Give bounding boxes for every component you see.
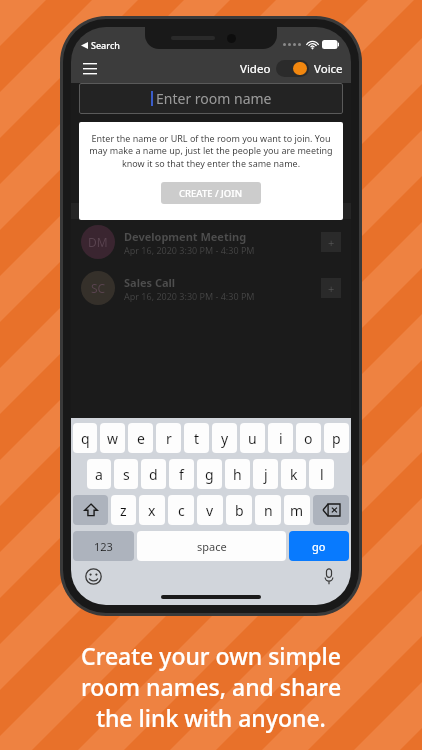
button[interactable]: p <box>324 423 349 453</box>
button[interactable]: space <box>137 531 286 561</box>
button[interactable]: d <box>141 459 166 489</box>
staticText: DM <box>88 234 108 250</box>
staticText: c <box>178 501 185 520</box>
staticText: Apr 16, 2020 3:30 PM - 4:30 PM <box>124 290 255 302</box>
button[interactable]: Shift <box>73 495 108 525</box>
button[interactable]: c <box>168 495 194 525</box>
staticText: y <box>221 429 229 448</box>
button[interactable]: q <box>73 423 97 453</box>
staticText: Video <box>240 61 271 77</box>
button[interactable]: h <box>225 459 250 489</box>
button[interactable]: u <box>240 423 265 453</box>
staticText: o <box>304 429 313 448</box>
button[interactable]: 123 <box>73 531 134 561</box>
staticText: the link with anyone. <box>0 702 422 733</box>
button[interactable]: i <box>268 423 293 453</box>
button[interactable]: Dictate <box>319 566 339 586</box>
button[interactable]: DM <box>71 219 351 265</box>
button[interactable]: f <box>169 459 194 489</box>
staticText: q <box>81 429 90 448</box>
button[interactable]: Video Voice toggle <box>276 60 309 77</box>
button[interactable]: o <box>296 423 321 453</box>
staticText: Apr 16, 2020 3:30 PM - 4:30 PM <box>124 244 255 256</box>
staticText: n <box>264 501 273 520</box>
staticText: Enter room name <box>156 89 272 108</box>
staticText: Enter the name or URL of the room you wa… <box>89 132 333 170</box>
staticText: w <box>107 429 119 448</box>
button[interactable]: go <box>289 531 349 561</box>
button[interactable]: CREATE / JOIN <box>161 182 261 204</box>
staticText: g <box>205 465 214 484</box>
staticText: i <box>279 429 283 448</box>
staticText: l <box>320 465 324 484</box>
staticText: x <box>148 501 156 520</box>
button[interactable]: z <box>111 495 136 525</box>
button[interactable]: t <box>184 423 209 453</box>
staticText: Create your own simple <box>0 640 422 671</box>
button[interactable]: j <box>253 459 278 489</box>
button[interactable]: r <box>156 423 181 453</box>
staticText: d <box>149 465 158 484</box>
button[interactable]: g <box>197 459 222 489</box>
staticText: u <box>248 429 257 448</box>
staticText: CREATE / JOIN <box>179 187 243 200</box>
staticText: p <box>332 429 341 448</box>
staticText: j <box>264 465 268 484</box>
staticText: Voice <box>314 61 343 77</box>
button[interactable]: a <box>87 459 111 489</box>
staticText: r <box>166 429 172 448</box>
button[interactable]: Backspace <box>313 495 349 525</box>
staticText: k <box>290 465 298 484</box>
staticText: h <box>233 465 242 484</box>
button[interactable]: Emoji <box>83 566 103 586</box>
staticText: v <box>206 501 214 520</box>
button[interactable]: w <box>100 423 125 453</box>
staticText: + <box>328 281 335 296</box>
button[interactable]: b <box>226 495 252 525</box>
button[interactable]: SC <box>71 265 351 311</box>
staticText: Sales Call <box>124 275 176 290</box>
button[interactable]: Enter room name <box>79 83 343 114</box>
button[interactable]: l <box>309 459 334 489</box>
staticText: Development Meeting <box>124 229 247 244</box>
button[interactable]: s <box>114 459 138 489</box>
button[interactable]: Menu <box>77 55 103 81</box>
button[interactable]: e <box>128 423 153 453</box>
staticText: s <box>123 465 130 484</box>
staticText: e <box>137 429 145 448</box>
staticText: m <box>290 501 304 520</box>
button[interactable]: Add <box>321 232 341 252</box>
staticText: z <box>120 501 127 520</box>
staticText: SC <box>91 280 106 296</box>
staticText: Search <box>91 39 120 51</box>
button[interactable]: x <box>139 495 165 525</box>
button[interactable]: n <box>255 495 281 525</box>
button[interactable]: k <box>281 459 306 489</box>
staticText: room names, and share <box>0 671 422 702</box>
staticText: t <box>194 429 200 448</box>
button[interactable]: v <box>197 495 223 525</box>
button[interactable]: m <box>284 495 310 525</box>
staticText: a <box>95 465 103 484</box>
button[interactable]: Add <box>321 278 341 298</box>
staticText: 123 <box>94 539 113 554</box>
staticText: f <box>179 465 184 484</box>
staticText: space <box>197 539 227 554</box>
staticText: go <box>312 539 326 554</box>
staticText: b <box>235 501 244 520</box>
button[interactable]: y <box>212 423 237 453</box>
staticText: + <box>328 235 335 250</box>
